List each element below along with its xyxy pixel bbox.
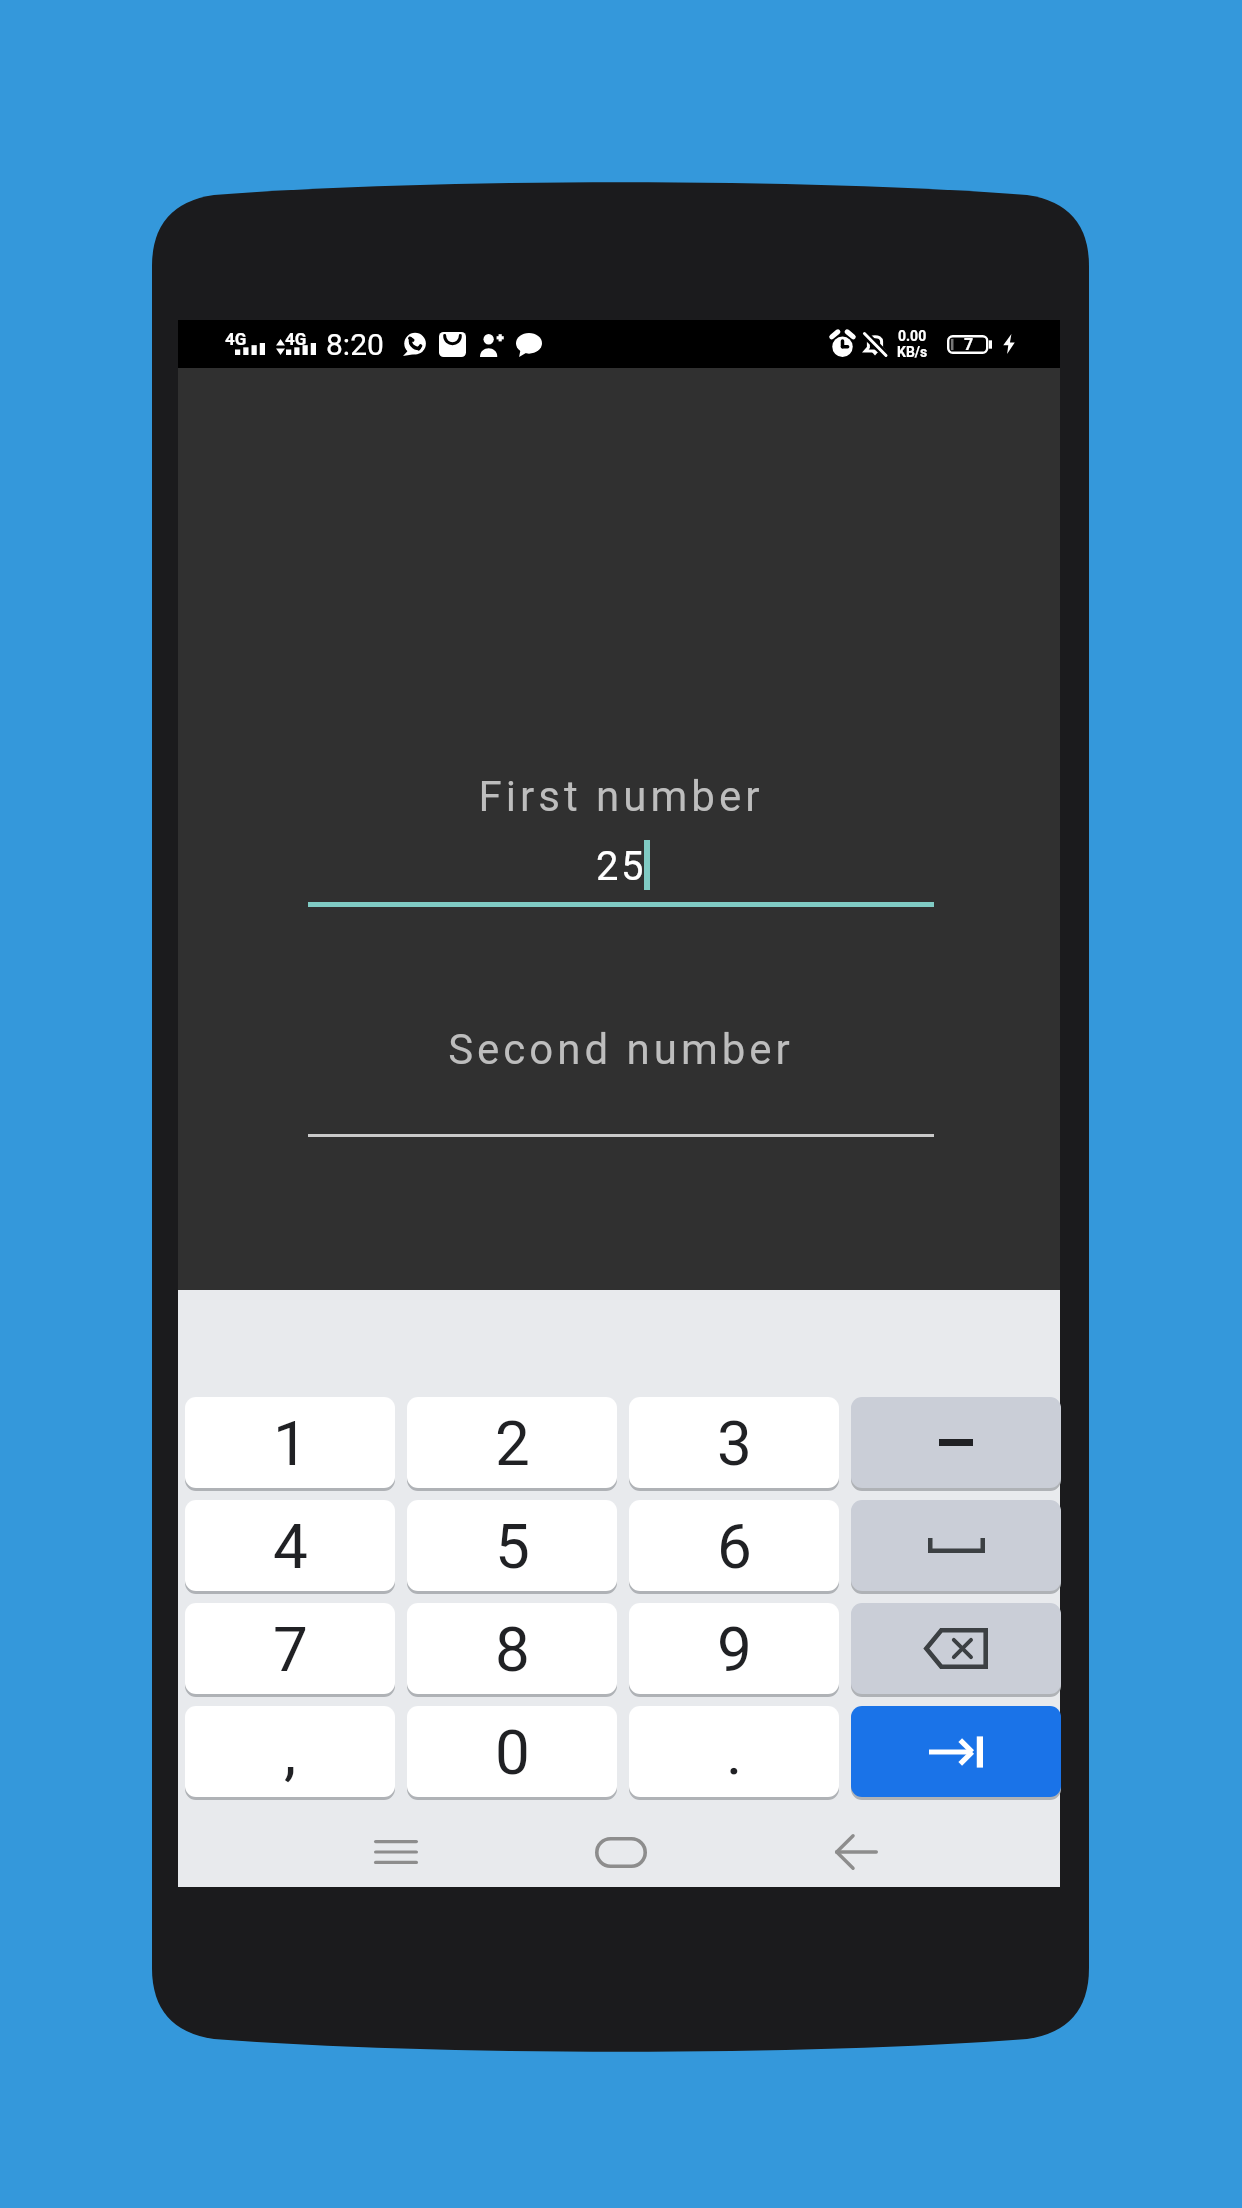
button[interactable]: 0 xyxy=(407,1706,617,1797)
staticText: 8 xyxy=(495,1613,530,1686)
button[interactable]: Space xyxy=(851,1500,1061,1591)
staticText: 7 xyxy=(964,335,974,354)
button[interactable]: Minus xyxy=(851,1397,1061,1488)
staticText: Second number xyxy=(308,1025,934,1074)
button[interactable]: 7 xyxy=(185,1603,395,1694)
staticText: 8:20 xyxy=(326,327,384,362)
staticText: 0 xyxy=(495,1716,530,1789)
staticText: 3 xyxy=(717,1407,752,1480)
button[interactable]: 2 xyxy=(407,1397,617,1488)
button[interactable]: 6 xyxy=(629,1500,839,1591)
staticText: 2 xyxy=(495,1407,530,1480)
button[interactable]: Second number xyxy=(308,1013,934,1137)
button[interactable]: 5 xyxy=(407,1500,617,1591)
button[interactable]: Backspace xyxy=(851,1603,1061,1694)
staticText: 4 xyxy=(273,1510,308,1583)
button[interactable]: . xyxy=(629,1706,839,1797)
button[interactable]: 1 xyxy=(185,1397,395,1488)
button[interactable]: Next field xyxy=(851,1706,1061,1797)
staticText: , xyxy=(284,1716,297,1789)
staticText: 9 xyxy=(717,1613,752,1686)
button[interactable]: 4 xyxy=(185,1500,395,1591)
staticText: First number xyxy=(308,772,934,821)
staticText: 6 xyxy=(717,1510,752,1583)
staticText: 1 xyxy=(273,1407,308,1480)
staticText: . xyxy=(726,1716,743,1789)
staticText: 4G xyxy=(225,329,247,349)
staticText: 25 xyxy=(596,843,646,890)
button[interactable]: Back xyxy=(814,1816,898,1888)
staticText: 0.00 xyxy=(898,328,927,344)
staticText: 5 xyxy=(495,1510,530,1583)
staticText: 4G xyxy=(285,329,307,349)
button[interactable]: 9 xyxy=(629,1603,839,1694)
button[interactable]: 8 xyxy=(407,1603,617,1694)
button[interactable]: 3 xyxy=(629,1397,839,1488)
staticText: KB/s xyxy=(897,344,928,360)
button[interactable]: , xyxy=(185,1706,395,1797)
button[interactable]: Recent apps xyxy=(335,1819,457,1885)
button[interactable]: First number xyxy=(308,760,934,907)
button[interactable]: Home xyxy=(579,1816,663,1888)
staticText: 7 xyxy=(273,1613,308,1686)
